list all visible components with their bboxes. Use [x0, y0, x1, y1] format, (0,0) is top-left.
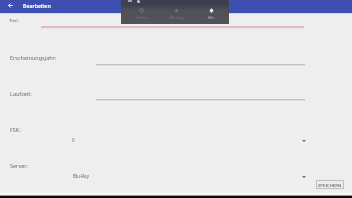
button[interactable]: Keine — [127, 5, 155, 23]
staticText: Laufzeit: — [10, 90, 32, 97]
staticText: Erscheinungsjahr: — [10, 54, 57, 61]
staticText: Wichtig — [169, 15, 184, 20]
button[interactable]: Zurück — [4, 0, 17, 11]
staticText: FSK: — [10, 126, 21, 133]
button[interactable]: SPEICHERN — [316, 180, 344, 189]
button[interactable]: FSK auswählen — [68, 134, 308, 146]
staticText: 0 — [72, 137, 75, 143]
staticText: Server: — [10, 162, 29, 169]
button[interactable]: Alle — [197, 5, 225, 23]
staticText: Keine — [136, 15, 147, 20]
staticText: SPEICHERN — [318, 182, 342, 188]
button[interactable]: Wichtig — [162, 5, 190, 23]
button[interactable]: Titel — [41, 16, 304, 27]
staticText: Alle — [207, 15, 215, 20]
staticText: Blu-Ray — [73, 173, 89, 179]
staticText: Titel: — [9, 17, 19, 23]
button[interactable]: Erscheinungsjahr — [96, 55, 305, 66]
button[interactable]: Laufzeit — [96, 91, 305, 102]
staticText: Bearbeiten — [23, 2, 51, 9]
button[interactable]: Server auswählen — [68, 170, 308, 182]
